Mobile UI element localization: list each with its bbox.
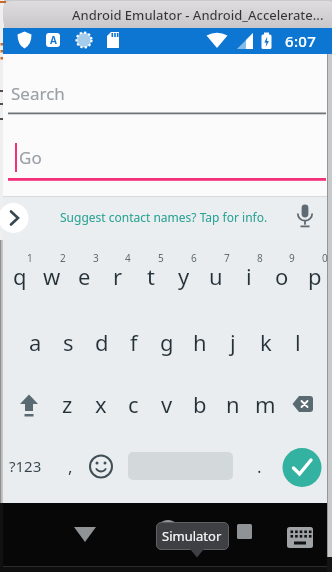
button[interactable]: h <box>183 318 216 366</box>
button[interactable] <box>86 450 116 482</box>
staticText: 3 <box>93 251 99 265</box>
button[interactable]: Suggest contact names? Tap for info. <box>40 206 288 228</box>
staticText: u <box>209 261 223 291</box>
staticText: 2 <box>60 251 66 265</box>
staticText: , <box>68 455 73 478</box>
button[interactable]: j <box>216 318 249 366</box>
staticText: Android Emulator - Android_Accelerate... <box>72 6 324 24</box>
staticText: Go <box>19 146 42 169</box>
staticText: s <box>63 327 74 357</box>
staticText: 9 <box>289 251 295 265</box>
button[interactable] <box>226 516 268 552</box>
button[interactable]: d <box>85 318 118 366</box>
staticText: j <box>230 327 236 357</box>
staticText: o <box>275 261 289 291</box>
button[interactable]: z <box>51 380 84 428</box>
staticText: 1 <box>27 251 33 265</box>
button[interactable]: s <box>52 318 85 366</box>
button[interactable]: q <box>3 252 36 300</box>
button[interactable]: n <box>216 380 249 428</box>
staticText: Suggest contact names? Tap for info. <box>60 209 268 225</box>
staticText: 7 <box>224 251 230 265</box>
button[interactable] <box>282 446 322 486</box>
staticText: b <box>193 389 207 419</box>
button[interactable]: a <box>19 318 52 366</box>
button[interactable]: k <box>249 318 282 366</box>
button[interactable]: r <box>101 252 134 300</box>
staticText: . <box>257 455 262 478</box>
staticText: p <box>308 261 322 291</box>
staticText: 6:07 <box>285 31 317 51</box>
staticText: k <box>260 327 272 357</box>
staticText: 8 <box>257 251 263 265</box>
staticText: 6 <box>191 251 197 265</box>
button[interactable] <box>64 516 106 552</box>
staticText: 5 <box>158 251 164 265</box>
button[interactable]: l <box>281 318 314 366</box>
staticText: x <box>95 389 107 419</box>
button[interactable] <box>292 200 324 234</box>
button[interactable] <box>3 197 43 239</box>
button[interactable]: y <box>167 252 200 300</box>
staticText: l <box>295 327 301 357</box>
staticText: w <box>43 261 61 291</box>
button[interactable]: e <box>68 252 101 300</box>
button[interactable] <box>286 384 322 424</box>
staticText: g <box>160 327 174 357</box>
button[interactable] <box>147 516 189 552</box>
staticText: m <box>255 389 276 419</box>
button[interactable]: Search <box>8 76 326 114</box>
staticText: c <box>128 389 139 419</box>
button[interactable]: b <box>183 380 216 428</box>
staticText: r <box>113 261 123 291</box>
button[interactable]: o <box>265 252 298 300</box>
button[interactable]: g <box>150 318 183 366</box>
staticText: a <box>29 327 42 357</box>
staticText: 0 <box>322 251 328 265</box>
staticText: f <box>130 327 138 357</box>
staticText: v <box>161 389 173 419</box>
button[interactable]: ?123 <box>6 452 44 480</box>
button[interactable]: m <box>249 380 282 428</box>
staticText: Search <box>11 82 65 105</box>
staticText: ?123 <box>9 456 42 476</box>
staticText: i <box>246 261 252 291</box>
button[interactable]: f <box>117 318 150 366</box>
staticText: q <box>13 261 27 291</box>
button[interactable]: i <box>232 252 265 300</box>
staticText: 4 <box>125 251 131 265</box>
button[interactable] <box>283 522 317 552</box>
staticText: t <box>147 261 155 291</box>
button[interactable]: t <box>134 252 167 300</box>
button[interactable]: Go <box>8 142 326 180</box>
button[interactable]: v <box>150 380 183 428</box>
button[interactable]: p <box>298 252 331 300</box>
staticText: A <box>50 33 57 47</box>
staticText: n <box>226 389 240 419</box>
button[interactable]: w <box>35 252 68 300</box>
button[interactable]: u <box>199 252 232 300</box>
staticText: y <box>178 261 190 291</box>
staticText: Simulator <box>162 527 222 545</box>
staticText: z <box>62 389 73 419</box>
staticText: d <box>95 327 109 357</box>
button[interactable]: x <box>84 380 117 428</box>
staticText: e <box>78 261 91 291</box>
button[interactable]: . <box>249 450 269 482</box>
button[interactable] <box>12 384 48 424</box>
button[interactable]: c <box>117 380 150 428</box>
staticText: h <box>193 327 207 357</box>
button[interactable]: , <box>60 450 80 482</box>
